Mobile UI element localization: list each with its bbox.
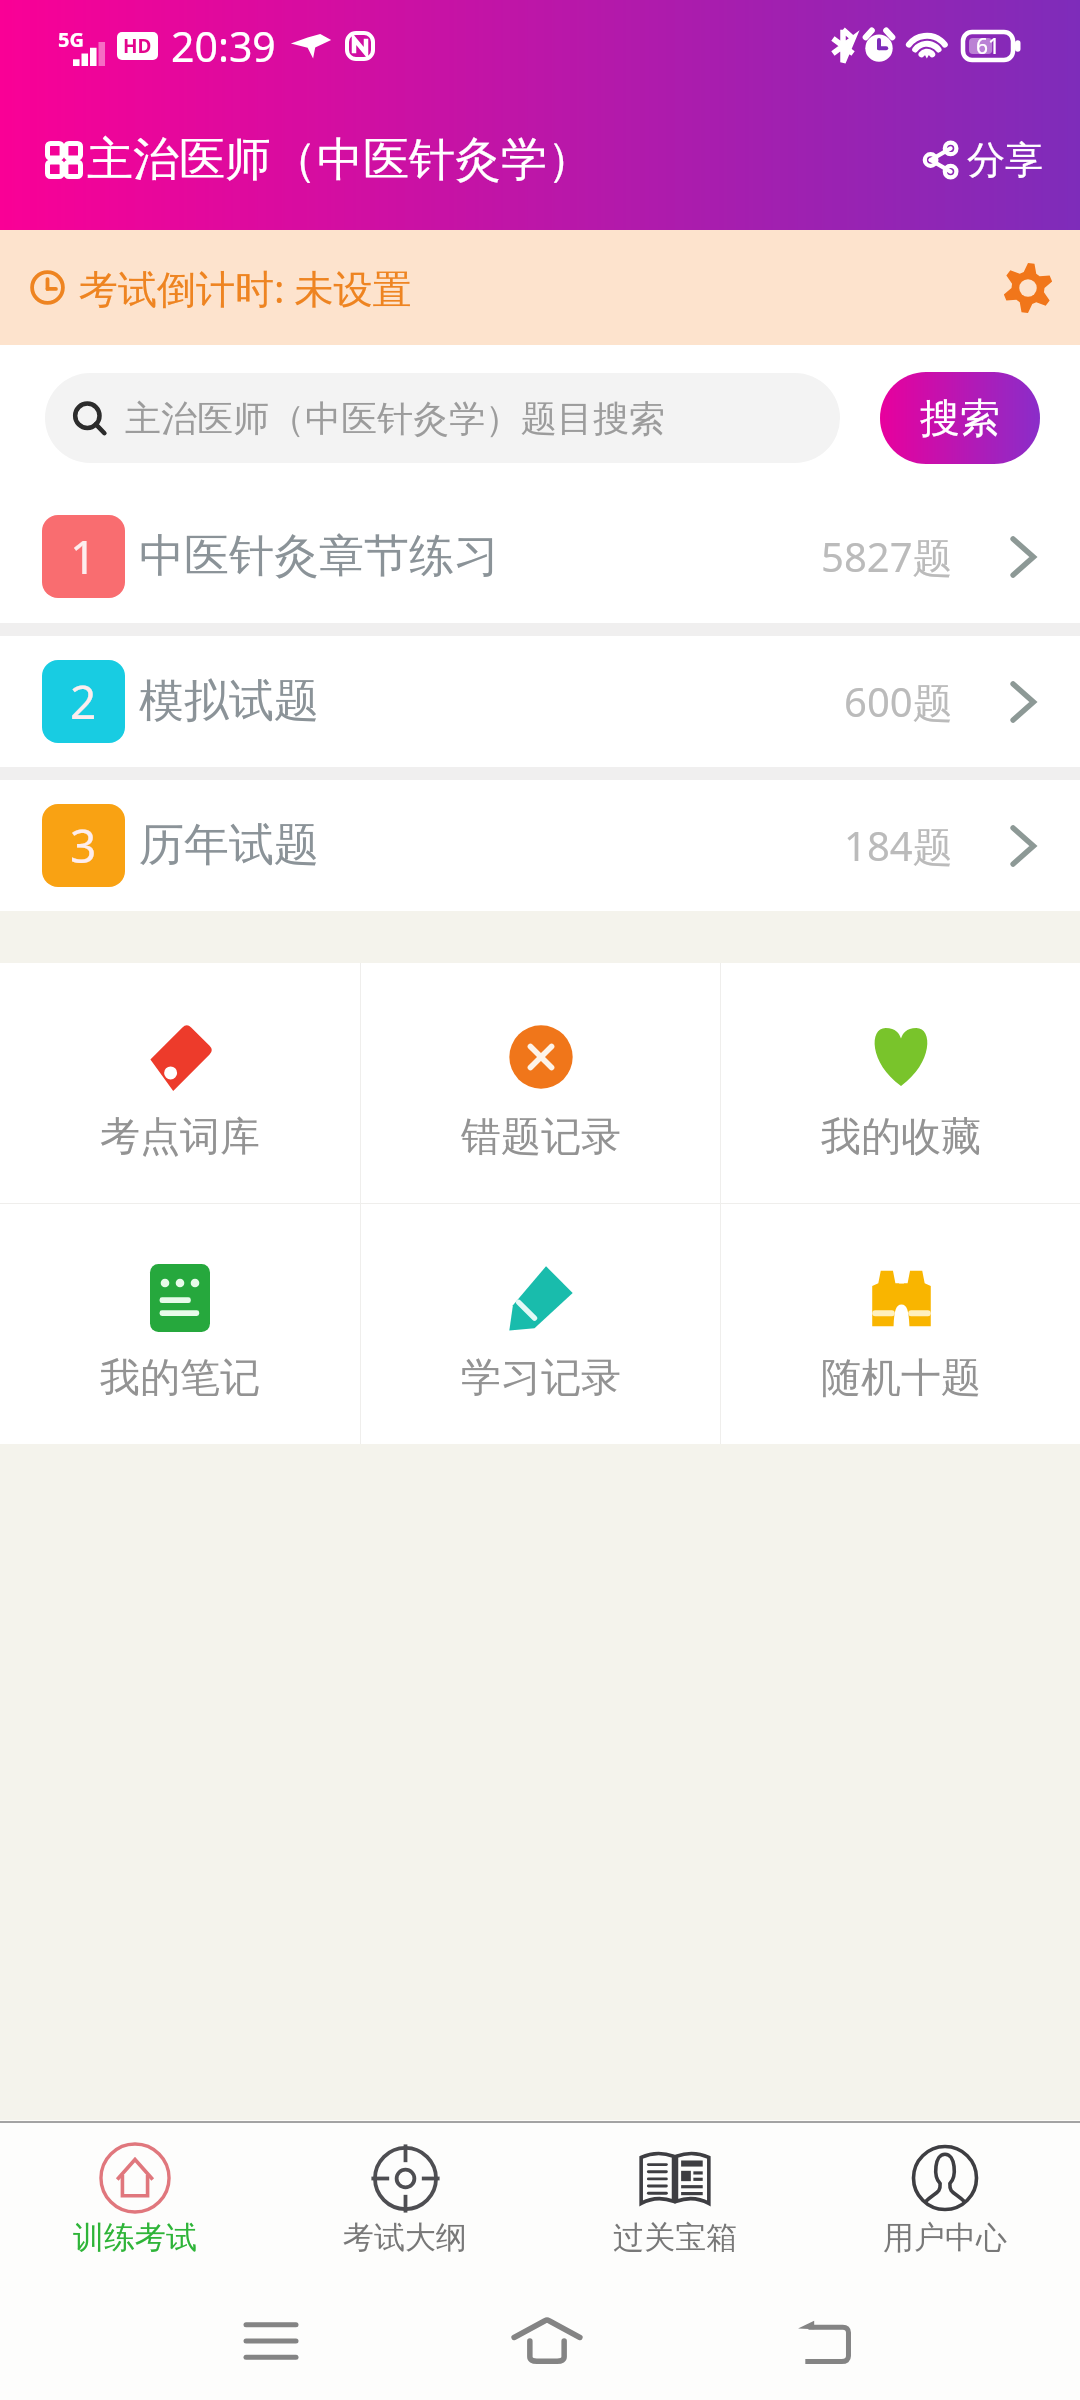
- staticText: 5G: [58, 26, 84, 53]
- button[interactable]: 随机十题: [721, 1204, 1080, 1444]
- staticText: 错题记录: [461, 1111, 621, 1161]
- staticText: 分享: [967, 136, 1043, 184]
- button[interactable]: 学习记录: [361, 1204, 720, 1444]
- button[interactable]: Home: [409, 2290, 685, 2392]
- staticText: 搜索: [920, 393, 1000, 443]
- button[interactable]: 用户中心: [810, 2123, 1080, 2290]
- staticText: 用户中心: [883, 2218, 1007, 2257]
- button[interactable]: 分享: [917, 128, 1047, 192]
- staticText: 600题: [844, 674, 953, 729]
- button[interactable]: 设置: [997, 257, 1059, 319]
- staticText: 历年试题: [139, 817, 319, 874]
- button[interactable]: 我的笔记: [0, 1204, 360, 1444]
- staticText: 主治医师（中医针灸学）: [87, 131, 593, 189]
- staticText: 训练考试: [73, 2218, 197, 2257]
- button[interactable]: 2: [0, 636, 1080, 767]
- button[interactable]: 错题记录: [361, 963, 720, 1203]
- staticText: 考试倒计时: 未设置: [79, 261, 412, 314]
- button[interactable]: 考点词库: [0, 963, 360, 1203]
- button[interactable]: 过关宝箱: [540, 2123, 810, 2290]
- button[interactable]: 考试倒计时: 未设置: [0, 230, 1080, 345]
- button[interactable]: 考试大纲: [270, 2123, 540, 2290]
- staticText: 3: [70, 814, 97, 877]
- button[interactable]: 1: [0, 490, 1080, 623]
- staticText: 随机十题: [821, 1352, 981, 1402]
- staticText: 我的笔记: [100, 1352, 260, 1402]
- staticText: 5827题: [821, 529, 953, 584]
- staticText: 2: [70, 670, 97, 733]
- staticText: 中医针灸章节练习: [139, 528, 499, 585]
- staticText: HD: [123, 33, 152, 59]
- staticText: 我的收藏: [821, 1111, 981, 1161]
- button[interactable]: 3: [0, 780, 1080, 911]
- staticText: 学习记录: [461, 1352, 621, 1402]
- button[interactable]: 训练考试: [0, 2123, 270, 2290]
- staticText: 考试大纲: [343, 2218, 467, 2257]
- staticText: 1: [70, 525, 97, 588]
- button[interactable]: 搜索: [880, 372, 1040, 464]
- button[interactable]: 我的收藏: [721, 963, 1080, 1203]
- staticText: 20:39: [171, 18, 276, 74]
- staticText: 过关宝箱: [613, 2218, 737, 2257]
- staticText: 主治医师（中医针灸学）题目搜索: [125, 396, 665, 441]
- staticText: 184题: [844, 818, 953, 873]
- staticText: 61: [976, 32, 1001, 61]
- staticText: 模拟试题: [139, 673, 319, 730]
- staticText: 考点词库: [100, 1111, 260, 1161]
- button[interactable]: Back: [685, 2290, 961, 2392]
- button[interactable]: 主治医师（中医针灸学）题目搜索: [45, 373, 840, 463]
- button[interactable]: Recent apps: [133, 2290, 409, 2392]
